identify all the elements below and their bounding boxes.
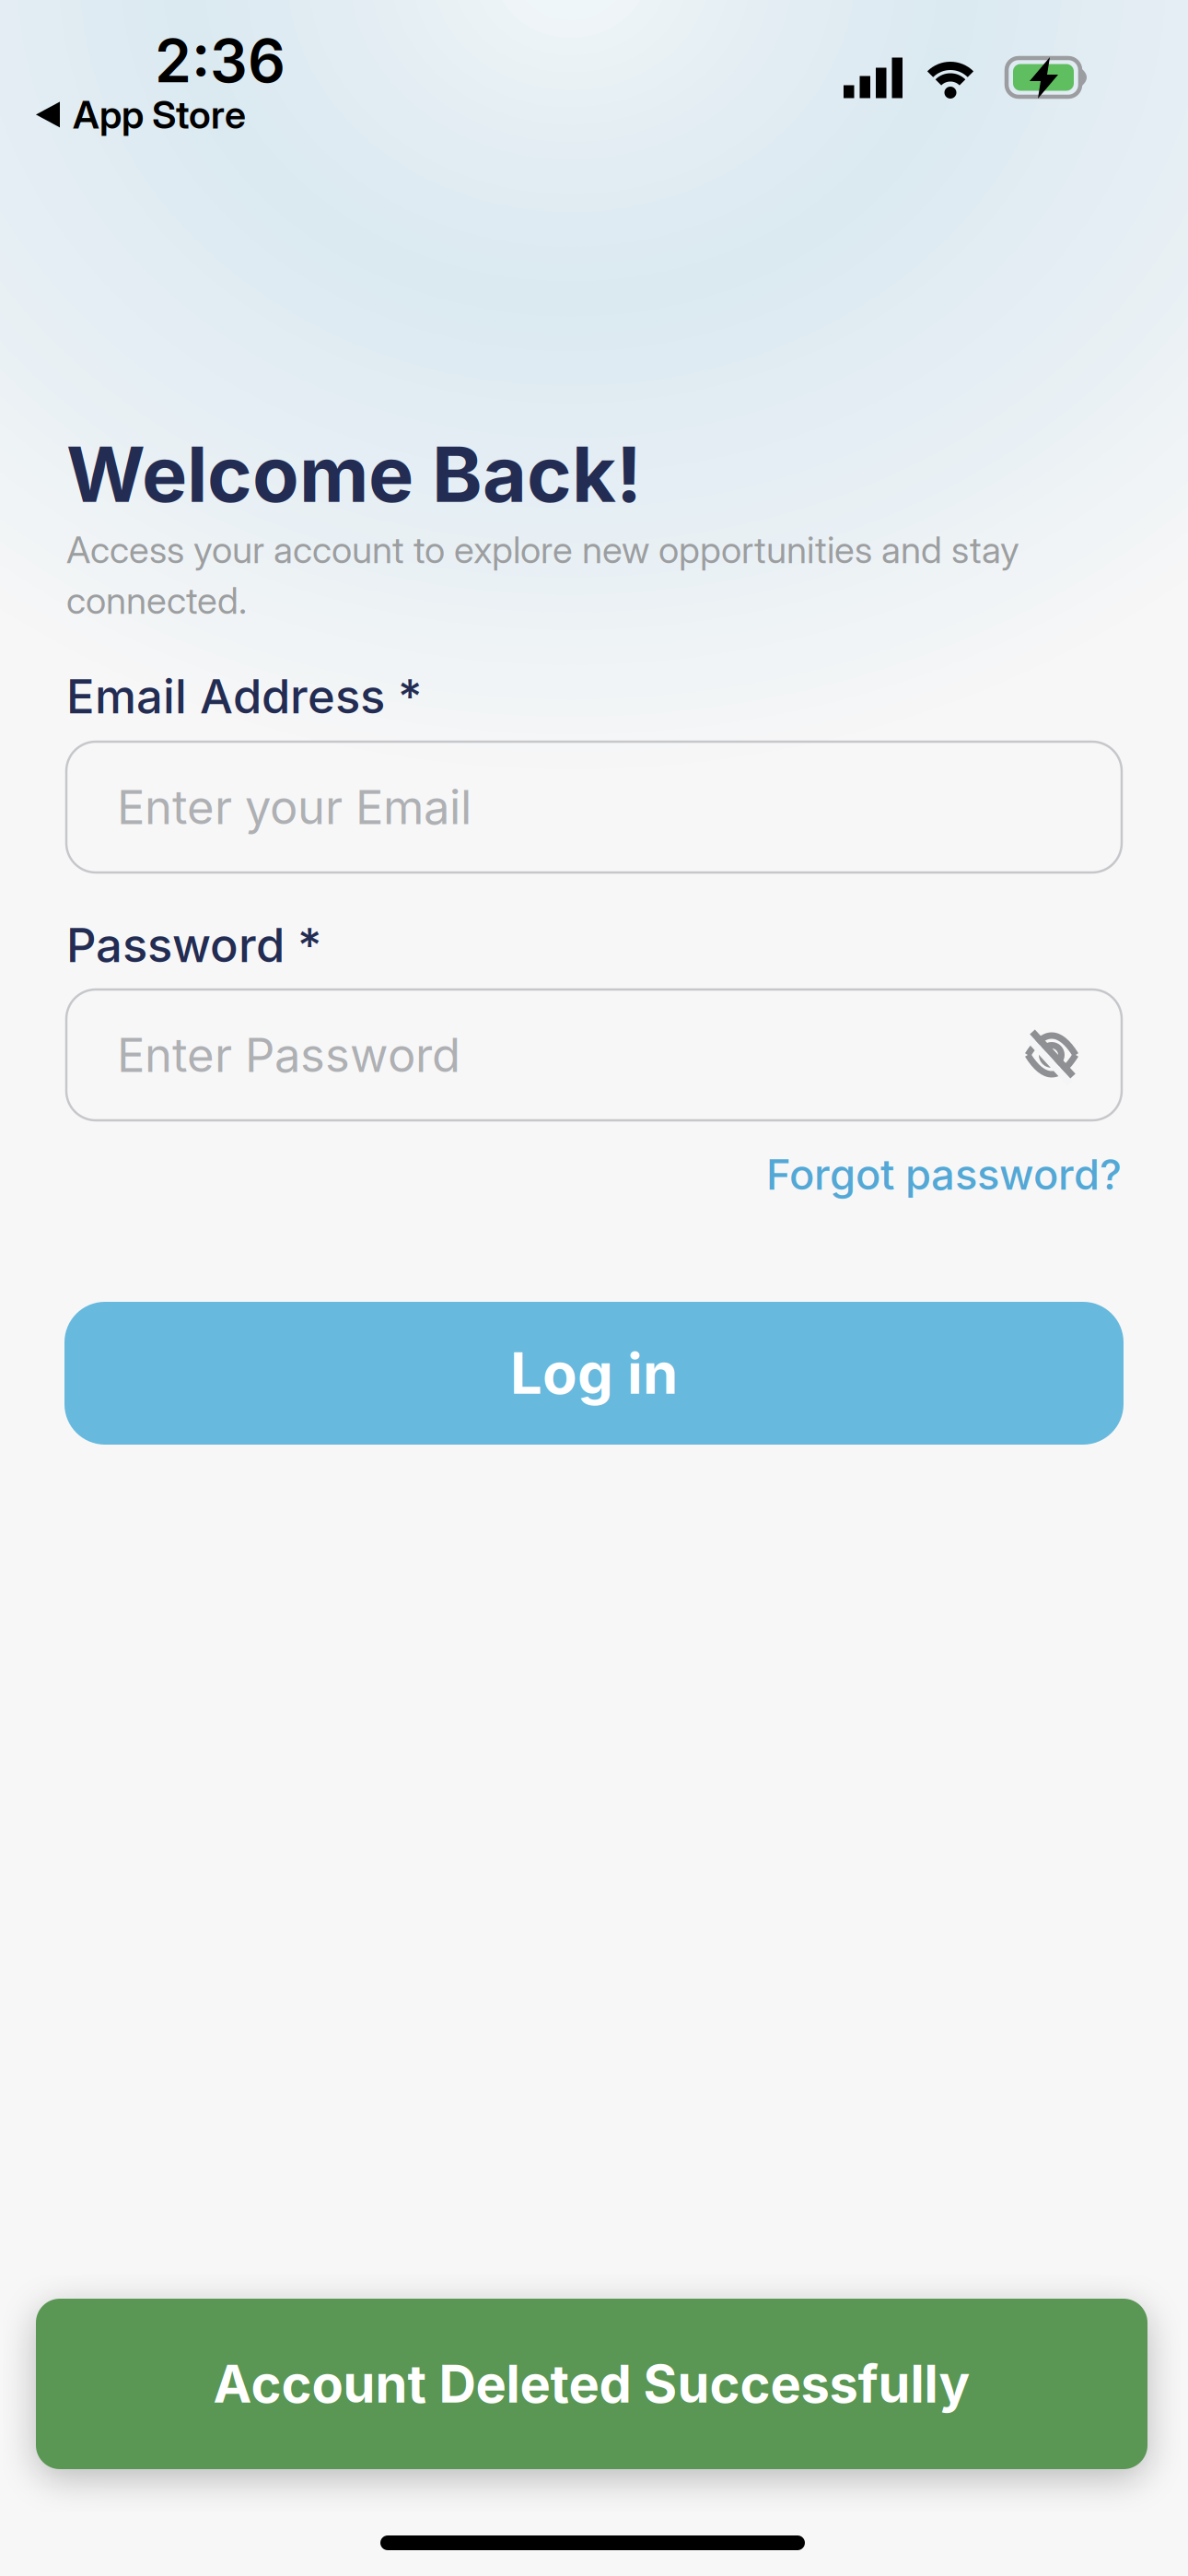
button[interactable]: Enter your Email (66, 742, 1122, 872)
staticText: Forgot password? (766, 1150, 1122, 1199)
button[interactable]: Enter Password (66, 989, 1122, 1120)
staticText: Enter Password (117, 1027, 460, 1082)
staticText: Enter your Email (117, 780, 472, 835)
staticText: Welcome Back! (66, 429, 642, 519)
staticText: 2:36 (155, 26, 285, 96)
button[interactable]: Log in (64, 1302, 1124, 1445)
staticText: Account Deleted Successfully (213, 2354, 970, 2414)
staticText: Access your account to explore new oppor… (66, 528, 1019, 622)
staticText: Email Address * (66, 669, 422, 724)
staticText: App Store (73, 92, 246, 137)
staticText: Password * (66, 918, 321, 973)
button[interactable]: Forgot password? (766, 1150, 1122, 1199)
staticText: Log in (510, 1340, 678, 1407)
